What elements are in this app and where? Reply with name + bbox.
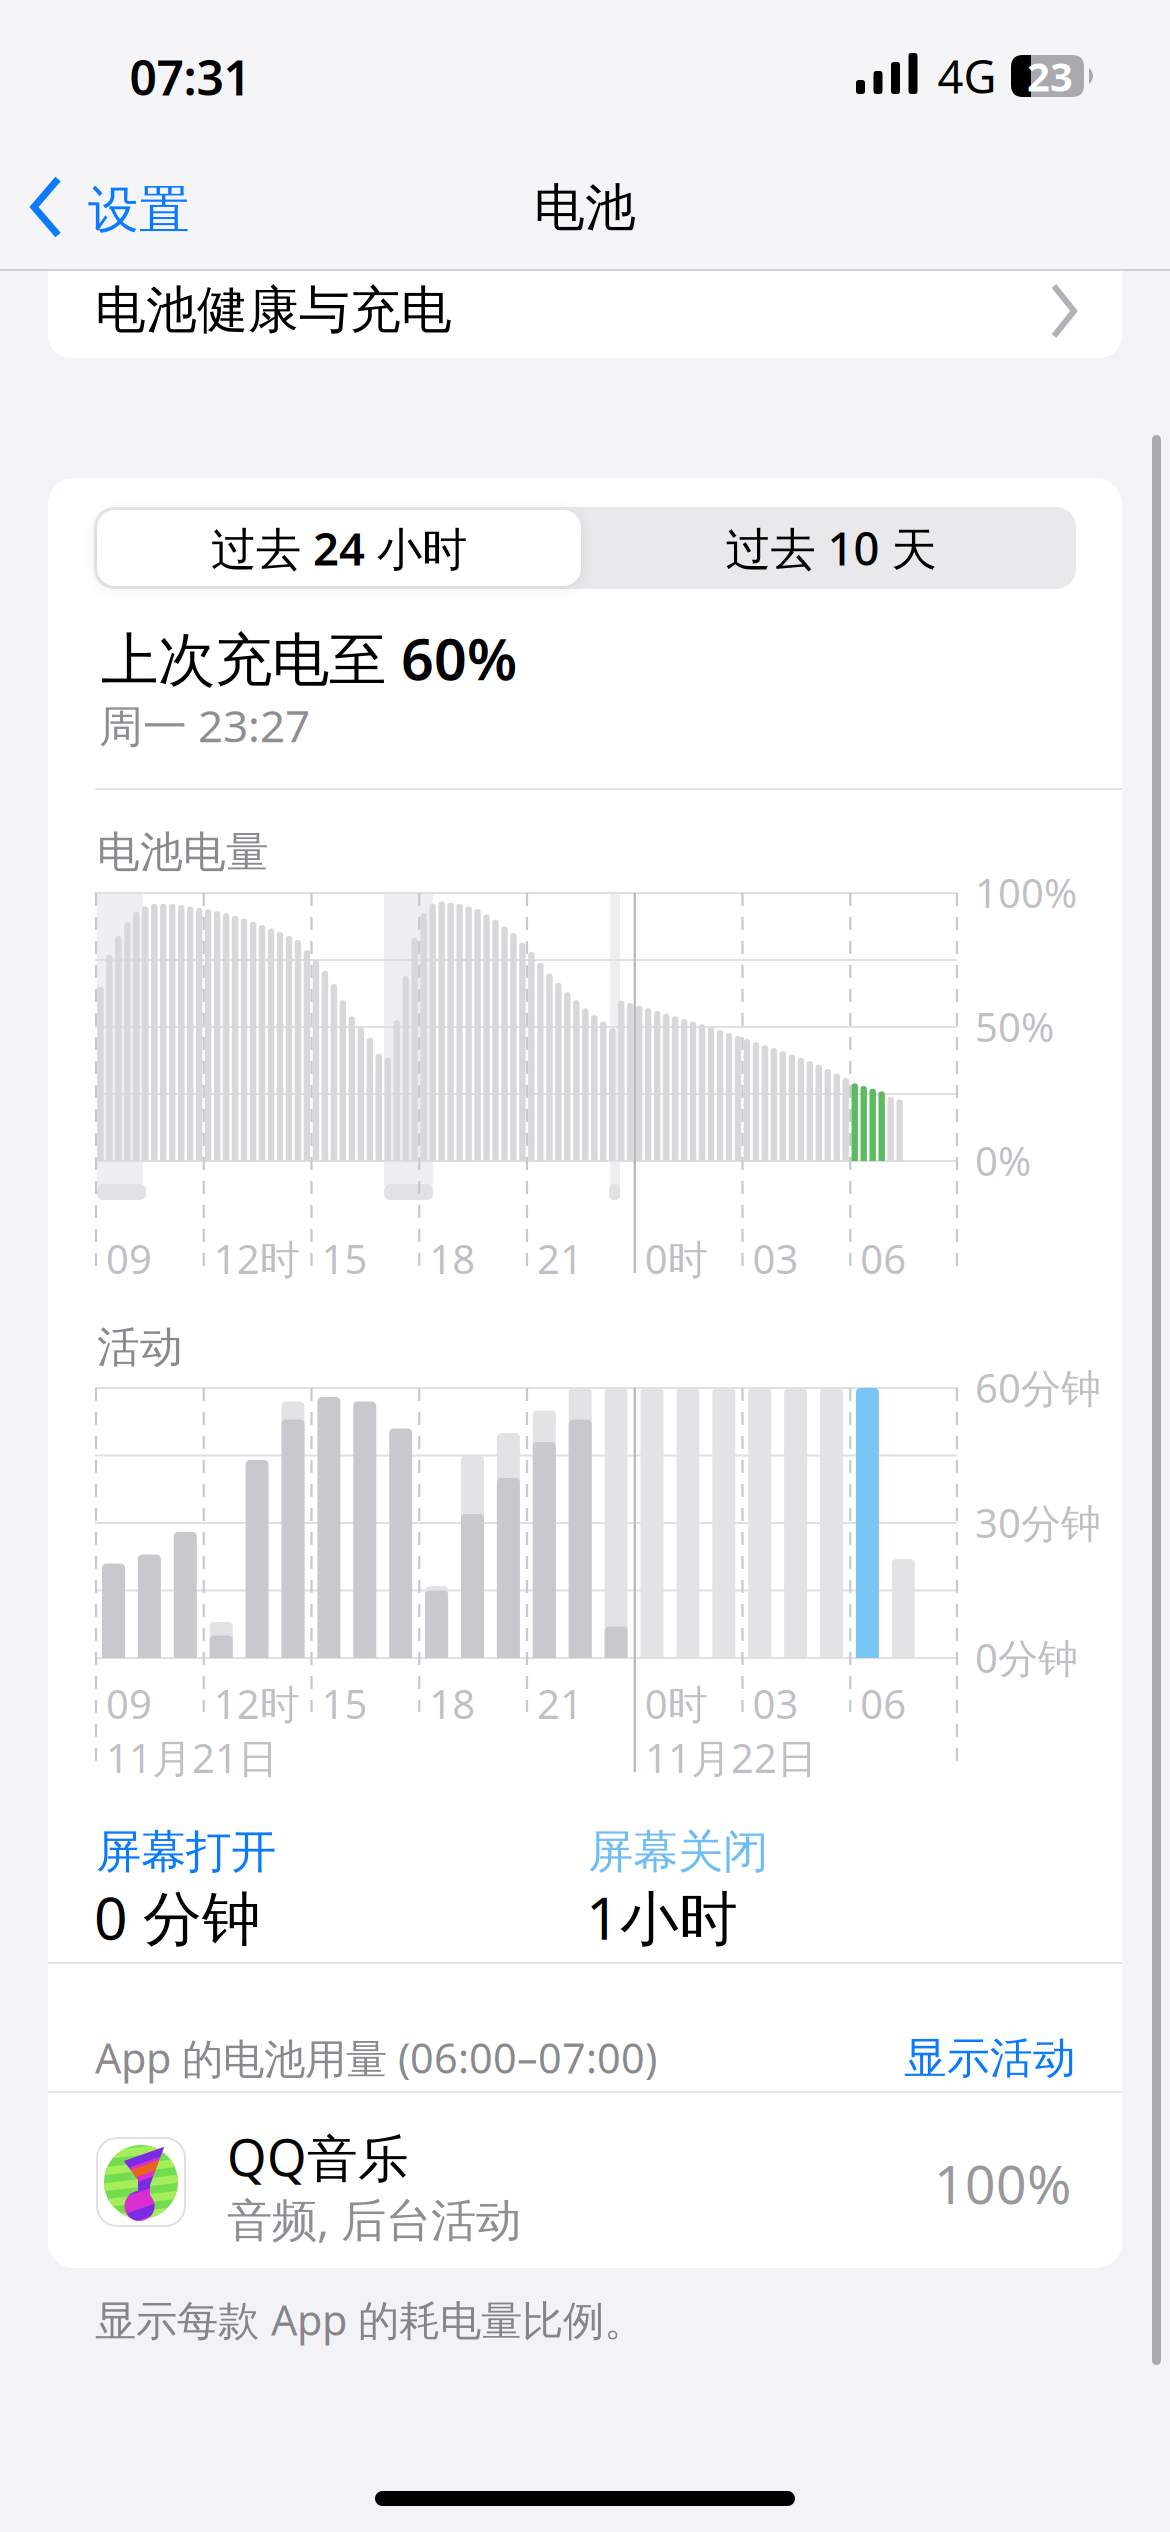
staticText: 0时 bbox=[645, 1677, 708, 1730]
staticText: 50% bbox=[975, 1000, 1054, 1053]
staticText: 4G bbox=[937, 46, 996, 106]
staticText: 21 bbox=[537, 1232, 583, 1285]
staticText: 100% bbox=[975, 866, 1077, 919]
staticText: 60分钟 bbox=[975, 1361, 1101, 1414]
staticText: 0% bbox=[975, 1134, 1031, 1187]
staticText: 03 bbox=[752, 1232, 798, 1285]
staticText: 11月22日 bbox=[645, 1731, 817, 1784]
staticText: 07:31 bbox=[129, 45, 250, 109]
staticText: 电池电量 bbox=[97, 826, 269, 878]
staticText: 23 bbox=[1027, 49, 1073, 102]
staticText: 30分钟 bbox=[975, 1496, 1101, 1549]
staticText: 0 分钟 bbox=[94, 1878, 261, 1956]
staticText: 12时 bbox=[214, 1232, 300, 1285]
staticText: 21 bbox=[537, 1677, 583, 1730]
staticText: 18 bbox=[429, 1232, 475, 1285]
staticText: 11月21日 bbox=[106, 1731, 278, 1784]
staticText: 显示每款 App 的耗电量比例。 bbox=[95, 2292, 645, 2347]
staticText: 周一 23:27 bbox=[99, 696, 310, 754]
staticText: 15 bbox=[321, 1232, 367, 1285]
staticText: App 的电池用量 (06:00–07:00) bbox=[95, 2030, 657, 2085]
button[interactable]: QQ音乐 bbox=[48, 2093, 1122, 2271]
staticText: 过去 10 天 bbox=[725, 518, 936, 578]
staticText: 过去 24 小时 bbox=[211, 518, 467, 578]
staticText: 09 bbox=[106, 1232, 152, 1285]
button[interactable]: 电池健康与充电 bbox=[48, 271, 1122, 358]
button[interactable]: 过去 10 天 bbox=[589, 510, 1073, 586]
staticText: 0时 bbox=[645, 1232, 708, 1285]
staticText: 活动 bbox=[97, 1321, 183, 1373]
staticText: 0分钟 bbox=[975, 1631, 1078, 1684]
staticText: 音频, 后台活动 bbox=[227, 2189, 521, 2249]
staticText: 15 bbox=[321, 1677, 367, 1730]
staticText: QQ音乐 bbox=[227, 2123, 409, 2190]
staticText: 显示活动 bbox=[904, 2032, 1076, 2084]
staticText: 12时 bbox=[214, 1677, 300, 1730]
staticText: 电池健康与充电 bbox=[95, 279, 452, 341]
staticText: 18 bbox=[429, 1677, 475, 1730]
staticText: 06 bbox=[860, 1677, 906, 1730]
staticText: 03 bbox=[752, 1677, 798, 1730]
staticText: 屏幕关闭 bbox=[588, 1824, 768, 1880]
staticText: 1小时 bbox=[586, 1878, 738, 1956]
staticText: 电池 bbox=[534, 177, 636, 239]
staticText: 100% bbox=[934, 2148, 1071, 2219]
button[interactable]: 过去 24 小时 bbox=[97, 510, 581, 586]
staticText: 设置 bbox=[88, 179, 190, 241]
button[interactable]: 返回设置 bbox=[0, 169, 200, 259]
staticText: 09 bbox=[106, 1677, 152, 1730]
staticText: 上次充电至 60% bbox=[101, 620, 517, 696]
staticText: 屏幕打开 bbox=[96, 1824, 276, 1880]
staticText: 06 bbox=[860, 1232, 906, 1285]
button[interactable]: 显示活动 bbox=[776, 2032, 1076, 2084]
